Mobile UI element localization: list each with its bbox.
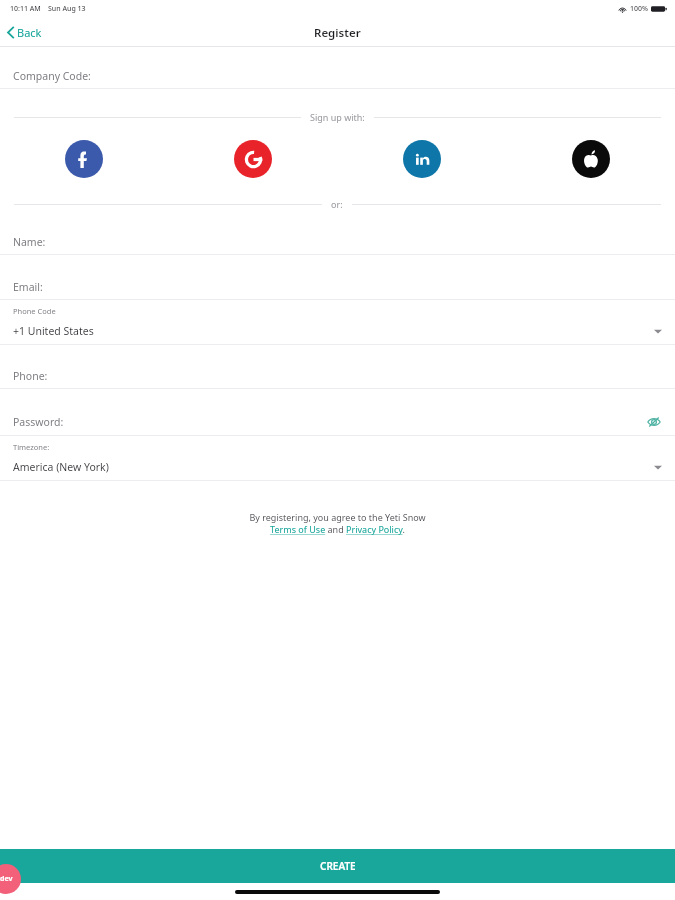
- staticText: Timezone:: [13, 442, 50, 452]
- button[interactable]: Email:: [0, 278, 675, 299]
- button[interactable]: CREATE: [0, 849, 675, 883]
- staticText: Phone:: [13, 369, 48, 383]
- staticText: America (New York): [13, 460, 109, 474]
- button[interactable]: dev build badge: [0, 864, 21, 894]
- staticText: By registering, you agree to the Yeti Sn…: [249, 511, 426, 536]
- staticText: Sign up with:: [310, 111, 365, 123]
- button[interactable]: Name:: [0, 233, 675, 254]
- button[interactable]: Phone:: [0, 367, 675, 388]
- button[interactable]: By registering, you agree to the Yeti Sn…: [0, 511, 675, 536]
- staticText: 100%: [630, 4, 648, 14]
- button[interactable]: Password:: [0, 412, 675, 435]
- staticText: Phone Code: [13, 306, 56, 316]
- button[interactable]: Timezone:: [0, 442, 675, 481]
- button[interactable]: Company Code:: [0, 67, 675, 88]
- staticText: Company Code:: [13, 69, 91, 83]
- button[interactable]: Sign up with Google: [234, 140, 272, 178]
- button[interactable]: Sign up with Facebook: [65, 140, 103, 178]
- button[interactable]: Sign up with Apple: [572, 140, 610, 178]
- staticText: or:: [331, 198, 343, 210]
- staticText: 10:11 AM: [10, 4, 41, 14]
- staticText: Sun Aug 13: [48, 4, 86, 14]
- button[interactable]: Back: [0, 21, 52, 44]
- button[interactable]: Sign up with LinkedIn: [403, 140, 441, 178]
- button[interactable]: Phone Code: [0, 306, 675, 345]
- staticText: Register: [314, 25, 361, 41]
- button[interactable]: Show password: [646, 414, 662, 430]
- staticText: Email:: [13, 280, 43, 294]
- staticText: +1 United States: [13, 324, 94, 338]
- staticText: dev: [0, 874, 13, 884]
- staticText: Name:: [13, 235, 46, 249]
- staticText: Password:: [13, 415, 64, 429]
- staticText: CREATE: [320, 859, 356, 873]
- staticText: Back: [17, 25, 42, 40]
